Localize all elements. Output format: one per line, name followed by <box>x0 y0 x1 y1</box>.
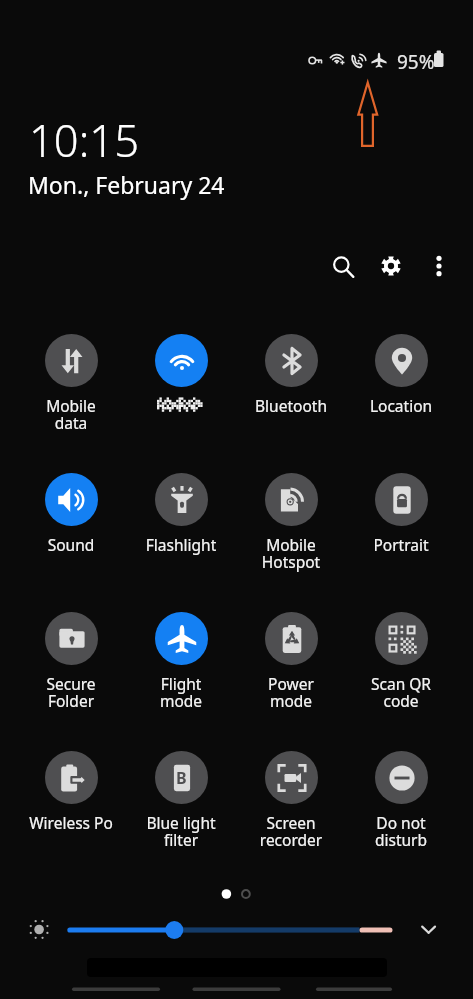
staticText: Do not disturb <box>347 812 455 851</box>
button[interactable]: More options <box>417 244 461 288</box>
button[interactable]: Wireless Po <box>16 751 126 833</box>
button[interactable]: Mobile data <box>16 334 126 434</box>
staticText: 10:15 <box>29 110 139 169</box>
button[interactable]: Expand quick settings <box>412 914 448 946</box>
staticText: Mobile Hotspot <box>237 534 345 573</box>
staticText: Scan QR code <box>347 673 455 712</box>
staticText: Mobile data <box>17 395 125 434</box>
button[interactable]: Flight mode <box>126 612 236 712</box>
button[interactable]: Power mode <box>236 612 346 712</box>
button[interactable]: Portrait <box>346 473 456 555</box>
button[interactable]: Screen recorder <box>236 751 346 851</box>
staticText: Screen recorder <box>237 812 345 851</box>
button[interactable]: Do not disturb <box>346 751 456 851</box>
staticText: Wireless Po <box>17 812 125 833</box>
button[interactable]: Flashlight <box>126 473 236 555</box>
button[interactable]: Mobile Hotspot <box>236 473 346 573</box>
staticText: Portrait <box>347 534 455 555</box>
staticText: Secure Folder <box>17 673 125 712</box>
button[interactable]: Brightness <box>60 920 400 940</box>
button[interactable]: Sound <box>16 473 126 555</box>
staticText: B <box>176 767 187 789</box>
staticText: 95% <box>397 49 435 75</box>
button[interactable]: Location <box>346 334 456 416</box>
staticText: Sound <box>17 534 125 555</box>
staticText: Bluetooth <box>237 395 345 416</box>
button[interactable]: Secure Folder <box>16 612 126 712</box>
staticText: Blue light filter <box>127 812 235 851</box>
staticText: Power mode <box>237 673 345 712</box>
button[interactable]: Settings <box>369 244 413 288</box>
button[interactable]: Bluetooth <box>236 334 346 416</box>
staticText: Flight mode <box>127 673 235 712</box>
button[interactable]: Blue light filter <box>126 751 236 851</box>
button[interactable]: Scan QR code <box>346 612 456 712</box>
staticText: Flashlight <box>127 534 235 555</box>
staticText: Location <box>347 395 455 416</box>
button[interactable]: Search <box>321 245 365 289</box>
button[interactable]: Wi-Fi <box>126 334 236 415</box>
staticText: Mon., February 24 <box>28 169 225 200</box>
